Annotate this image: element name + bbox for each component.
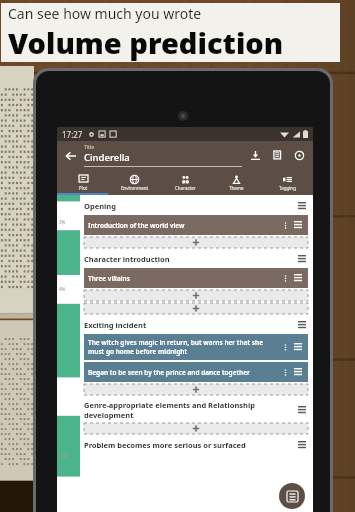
button[interactable]: Add item xyxy=(84,290,308,301)
button[interactable]: Exciting incident xyxy=(84,319,308,331)
button[interactable]: Began to be seen by the prince and dance… xyxy=(84,362,308,382)
staticText: Three villains xyxy=(88,274,278,283)
button[interactable]: Add item xyxy=(84,423,308,434)
button[interactable]: Reorder item xyxy=(292,366,304,378)
button[interactable]: More options xyxy=(281,221,290,230)
button[interactable]: Add item xyxy=(84,303,308,314)
staticText: Problem becomes more serious or surfaced xyxy=(84,440,292,450)
button[interactable]: Reorder section xyxy=(296,404,308,416)
staticText: Character introduction xyxy=(84,254,292,264)
button[interactable]: Theme xyxy=(211,170,262,195)
staticText: Began to be seen by the prince and dance… xyxy=(88,368,278,377)
button[interactable]: Reorder section xyxy=(296,319,308,331)
button[interactable]: Tagging xyxy=(262,170,313,195)
staticText: Plot xyxy=(79,185,88,191)
button[interactable]: More options xyxy=(281,274,290,283)
staticText: 2% xyxy=(59,219,66,225)
staticText: Cinderella xyxy=(84,151,130,164)
button[interactable]: Introduction of the world view xyxy=(84,215,308,235)
button[interactable]: Reorder section xyxy=(296,439,308,451)
button[interactable]: More options xyxy=(281,343,290,352)
button[interactable]: Reorder item xyxy=(292,272,304,284)
button[interactable]: Notes xyxy=(270,148,285,163)
button[interactable]: Add item xyxy=(84,237,308,248)
button[interactable]: The witch gives magic in return, but war… xyxy=(84,334,308,360)
button[interactable]: Title xyxy=(84,144,242,167)
button[interactable]: More options xyxy=(281,368,290,377)
button[interactable]: Reorder section xyxy=(296,253,308,265)
button[interactable]: Character introduction xyxy=(84,253,308,265)
button[interactable]: Back xyxy=(63,148,79,164)
staticText: Theme xyxy=(229,185,244,191)
staticText: The witch gives magic in return, but war… xyxy=(88,338,278,356)
staticText: Environment xyxy=(121,185,149,191)
button[interactable]: Opening xyxy=(84,200,308,212)
staticText: Can see how much you wrote xyxy=(8,4,202,23)
button[interactable]: Reorder item xyxy=(292,219,304,231)
staticText: Volume prediction xyxy=(8,23,284,62)
staticText: Introduction of the world view xyxy=(88,221,278,230)
button[interactable]: Problem becomes more serious or surfaced xyxy=(84,439,308,451)
button[interactable]: Three villains xyxy=(84,268,308,288)
button[interactable]: Reorder item xyxy=(292,341,304,353)
staticText: Opening xyxy=(84,201,292,211)
button[interactable]: Menu xyxy=(279,483,305,509)
button[interactable]: Genre-appropriate elements and Relations… xyxy=(84,400,308,420)
button[interactable]: Plot xyxy=(57,170,109,195)
button[interactable]: Reorder section xyxy=(296,200,308,212)
button[interactable]: Character xyxy=(160,170,211,195)
staticText: Exciting incident xyxy=(84,320,292,330)
staticText: Tagging xyxy=(279,185,296,191)
staticText: Genre-appropriate elements and Relations… xyxy=(84,400,292,420)
staticText: 4% xyxy=(59,286,66,292)
button[interactable]: Environment xyxy=(109,170,160,195)
staticText: 17:27 xyxy=(62,129,83,140)
button[interactable]: Help xyxy=(292,148,307,163)
button[interactable]: Add item xyxy=(84,384,308,395)
staticText: Title xyxy=(84,144,94,151)
staticText: Character xyxy=(175,185,196,191)
button[interactable]: Download xyxy=(248,148,263,163)
staticText: 11% xyxy=(58,453,67,459)
